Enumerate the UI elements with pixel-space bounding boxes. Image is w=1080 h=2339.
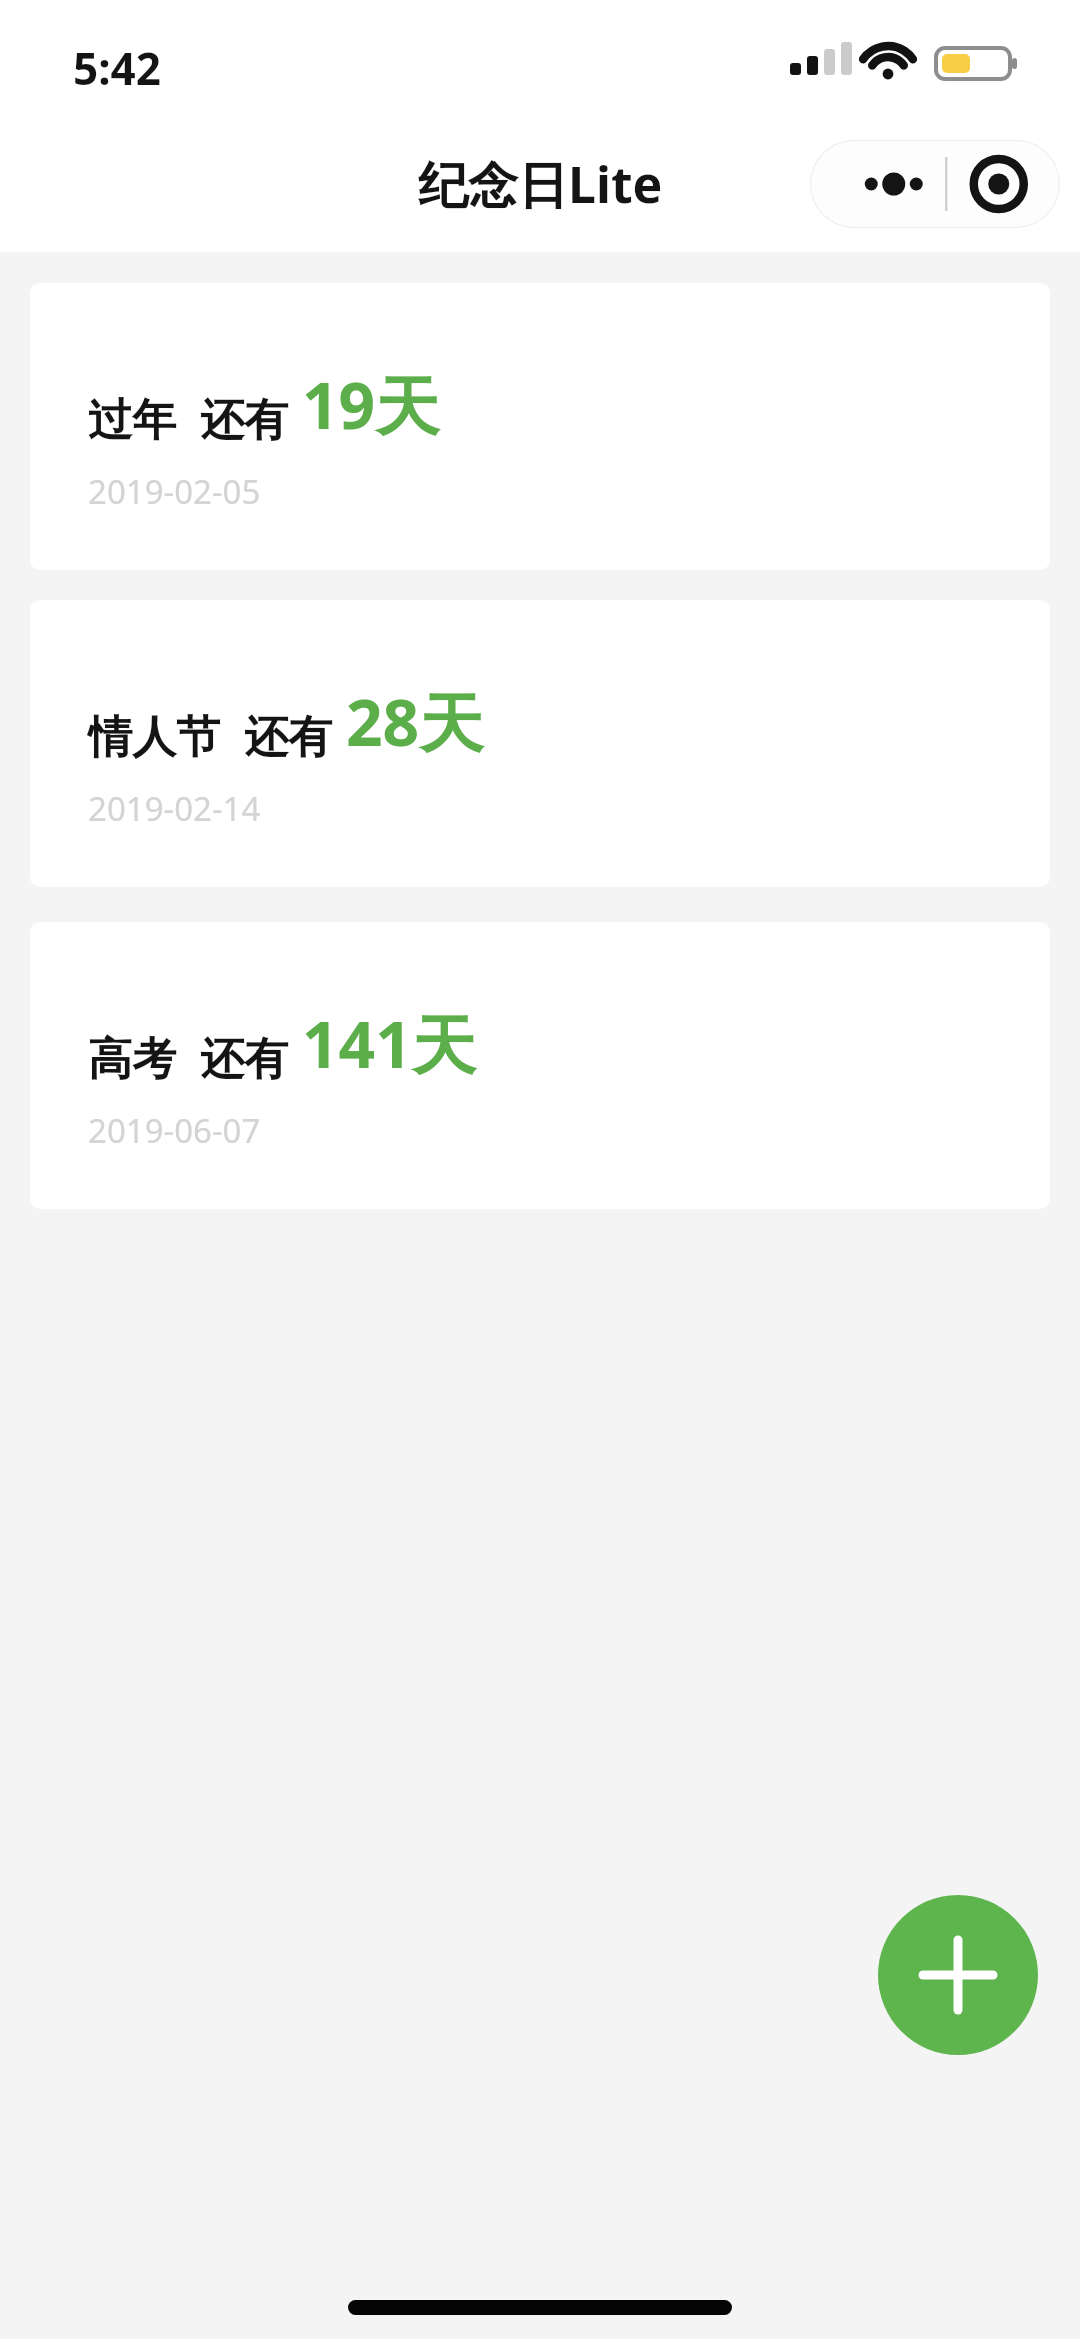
staticText: 纪念日Lite xyxy=(418,150,663,218)
staticText: 2019-02-05 xyxy=(88,469,261,514)
button[interactable]: More options and close mini program xyxy=(810,140,1060,228)
button[interactable]: 过年 xyxy=(30,283,1050,570)
staticText: 情人节 xyxy=(88,710,220,765)
staticText: 141天 xyxy=(302,1000,476,1087)
staticText: 2019-06-07 xyxy=(88,1108,261,1153)
staticText: 2019-02-14 xyxy=(88,786,261,831)
button[interactable]: 高考 xyxy=(30,922,1050,1209)
staticText: 28天 xyxy=(346,678,484,765)
button[interactable]: Add anniversary xyxy=(878,1895,1038,2055)
button[interactable]: 情人节 xyxy=(30,600,1050,887)
staticText: 高考 xyxy=(88,1032,176,1087)
staticText: 还有 xyxy=(200,1032,288,1087)
staticText: 还有 xyxy=(244,710,332,765)
staticText: 5:42 xyxy=(73,38,161,98)
staticText: 还有 xyxy=(200,393,288,448)
staticText: 19天 xyxy=(302,361,440,448)
staticText: 过年 xyxy=(88,393,176,448)
